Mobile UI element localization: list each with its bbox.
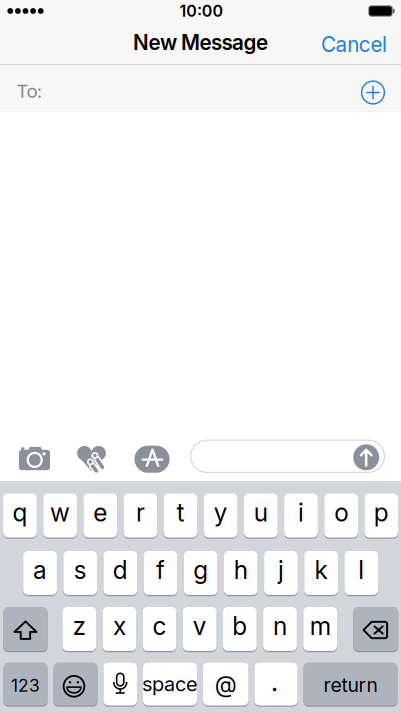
staticText: e	[93, 498, 107, 527]
staticText: k	[315, 555, 328, 585]
button[interactable]: z	[62, 606, 96, 652]
staticText: 123	[11, 675, 40, 696]
button[interactable]: n	[263, 606, 297, 652]
staticText: space	[142, 672, 198, 696]
button[interactable]: h	[224, 550, 258, 596]
staticText: 10:00	[180, 1, 223, 21]
button[interactable]: @	[203, 661, 248, 706]
button[interactable]: .	[254, 661, 297, 706]
staticText: u	[254, 498, 268, 527]
button[interactable]: p	[364, 492, 398, 538]
staticText: New Message	[133, 30, 268, 55]
button[interactable]: v	[183, 606, 216, 652]
button[interactable]: d	[103, 550, 137, 596]
staticText: b	[232, 611, 247, 641]
staticText: h	[234, 555, 248, 585]
staticText: v	[193, 611, 207, 641]
button[interactable]: Camera	[19, 445, 50, 470]
button[interactable]: Apps	[134, 446, 170, 473]
staticText: o	[334, 498, 348, 527]
button[interactable]: i	[284, 492, 318, 538]
button[interactable]: m	[303, 606, 337, 652]
staticText: x	[113, 611, 126, 641]
staticText: i	[298, 498, 304, 527]
staticText: return	[323, 673, 377, 697]
staticText: y	[214, 498, 228, 527]
button[interactable]: Emoji	[53, 661, 97, 706]
staticText: .	[271, 665, 278, 698]
staticText: z	[73, 611, 86, 641]
button[interactable]: Digital Touch	[77, 446, 106, 471]
button[interactable]: Dictation	[103, 661, 137, 706]
button[interactable]: c	[143, 606, 176, 652]
button[interactable]: r	[123, 492, 157, 538]
button[interactable]: s	[63, 550, 97, 596]
staticText: @	[215, 670, 237, 698]
button[interactable]: Send	[353, 444, 379, 470]
staticText: l	[358, 555, 364, 585]
button[interactable]: u	[244, 492, 278, 538]
button[interactable]: space	[143, 661, 197, 706]
button[interactable]: k	[304, 550, 338, 596]
staticText: c	[152, 611, 166, 641]
button[interactable]: Cancel	[321, 32, 387, 57]
button[interactable]: t	[164, 492, 197, 538]
button[interactable]: e	[83, 492, 117, 538]
staticText: w	[50, 498, 70, 527]
staticText: g	[193, 555, 208, 585]
staticText: q	[12, 498, 27, 527]
button[interactable]: 123	[3, 661, 47, 706]
staticText: n	[273, 611, 287, 641]
staticText: a	[33, 555, 47, 585]
staticText: To:	[16, 80, 42, 102]
button[interactable]: b	[223, 606, 257, 652]
button[interactable]: q	[3, 492, 37, 538]
staticText: p	[374, 498, 389, 527]
button[interactable]: j	[264, 550, 298, 596]
button[interactable]: Shift	[3, 606, 48, 652]
staticText: Cancel	[321, 32, 387, 57]
staticText: s	[74, 555, 87, 585]
button[interactable]: a	[23, 550, 57, 596]
staticText: d	[113, 555, 128, 585]
staticText: j	[278, 555, 284, 585]
button[interactable]: g	[184, 550, 217, 596]
button[interactable]: Add Contact	[359, 78, 387, 106]
button[interactable]: Delete	[353, 606, 398, 652]
button[interactable]: y	[204, 492, 237, 538]
staticText: m	[310, 611, 331, 641]
staticText: t	[176, 498, 184, 527]
button[interactable]: return	[303, 661, 397, 706]
staticText: f	[156, 555, 165, 585]
staticText: r	[136, 498, 145, 527]
button[interactable]: l	[344, 550, 378, 596]
button[interactable]: w	[43, 492, 77, 538]
button[interactable]: f	[144, 550, 177, 596]
button[interactable]: o	[324, 492, 358, 538]
button[interactable]: x	[103, 606, 136, 652]
